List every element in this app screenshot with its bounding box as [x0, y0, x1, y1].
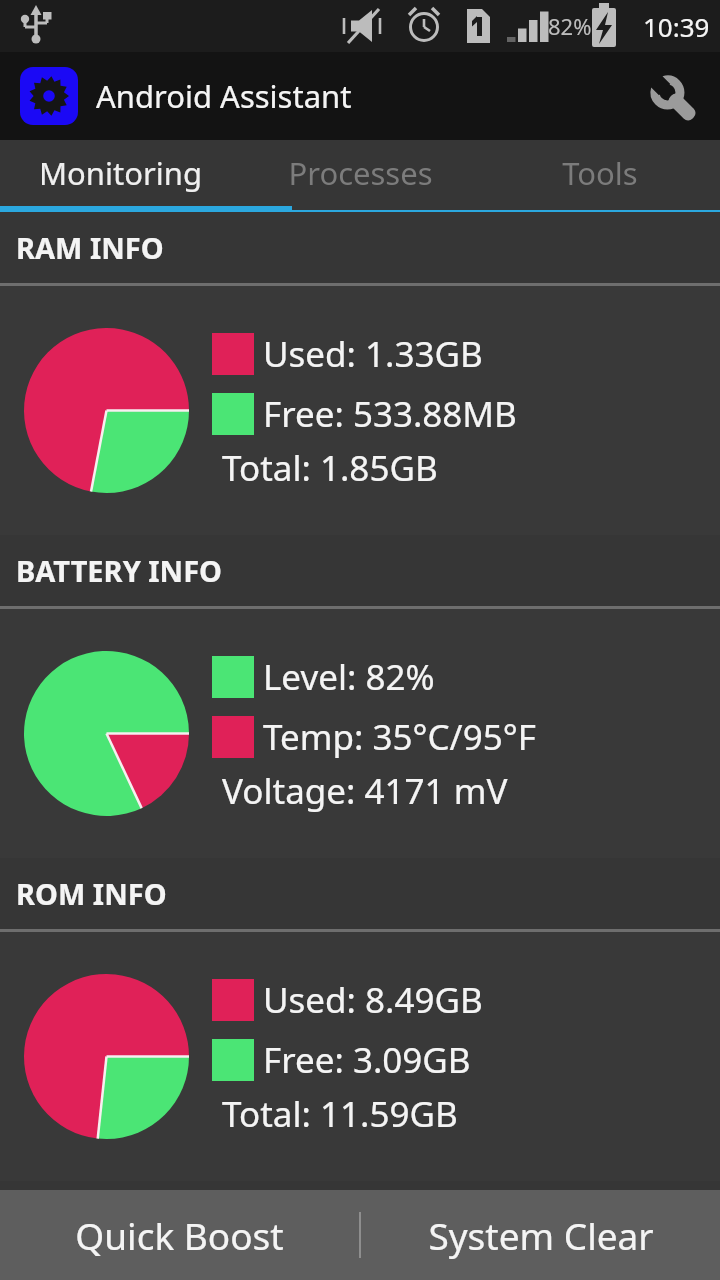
staticText: Voltage: 4171 mV: [222, 767, 508, 815]
staticText: Temp: 35°C/95°F: [263, 713, 536, 761]
button[interactable]: Android Assistant: [20, 52, 638, 140]
staticText: ROM INFO: [16, 874, 167, 913]
button[interactable]: System Clear: [361, 1190, 720, 1280]
button[interactable]: Monitoring: [0, 140, 240, 206]
staticText: 10:39: [643, 9, 710, 44]
staticText: 82%: [548, 11, 592, 41]
staticText: Free: 3.09GB: [263, 1036, 471, 1084]
staticText: Android Assistant: [96, 75, 352, 117]
staticText: Monitoring: [39, 152, 202, 194]
button[interactable]: Tools: [480, 140, 720, 206]
button[interactable]: Tools: [638, 63, 704, 129]
button[interactable]: Level: 82%: [0, 609, 720, 858]
staticText: Processes: [288, 152, 433, 194]
staticText: RAM INFO: [16, 228, 164, 267]
staticText: System Clear: [428, 1210, 654, 1260]
staticText: Level: 82%: [263, 653, 435, 701]
button[interactable]: Quick Boost: [0, 1190, 359, 1280]
staticText: Used: 1.33GB: [263, 330, 483, 378]
staticText: Tools: [562, 152, 638, 194]
button[interactable]: Used: 1.33GB: [0, 286, 720, 535]
staticText: Free: 533.88MB: [263, 390, 517, 438]
staticText: Used: 8.49GB: [263, 976, 483, 1024]
staticText: Total: 1.85GB: [222, 444, 438, 492]
button[interactable]: Used: 8.49GB: [0, 932, 720, 1181]
staticText: Total: 11.59GB: [222, 1090, 458, 1138]
button[interactable]: Processes: [240, 140, 480, 206]
staticText: Quick Boost: [75, 1210, 284, 1260]
staticText: BATTERY INFO: [16, 551, 223, 590]
